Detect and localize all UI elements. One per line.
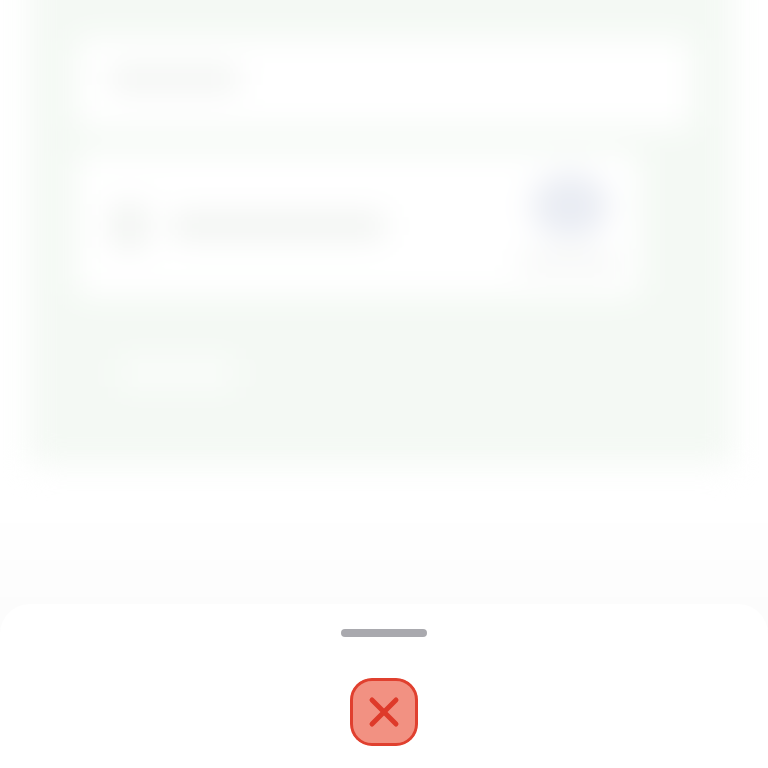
button[interactable]: Close <box>350 678 418 746</box>
